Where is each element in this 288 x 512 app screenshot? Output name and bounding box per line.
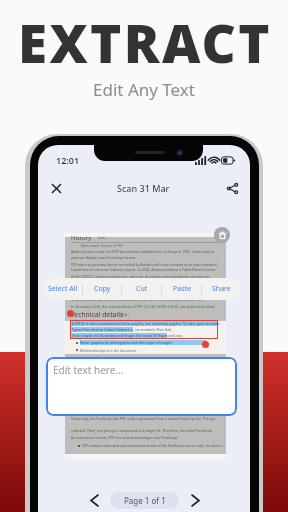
staticText: as video, audio and 3D objects. PDF file… — [71, 364, 206, 369]
staticText: Committee of volunteer industry experts.… — [71, 267, 216, 272]
staticText: In addition to graphics and text, PDF su… — [71, 357, 211, 362]
button[interactable]: Next page — [187, 492, 203, 509]
staticText: EXTRACT — [18, 6, 272, 78]
staticText: As a document format, PDF has several ad… — [71, 435, 179, 440]
staticText: Scan 31 Mar — [117, 182, 170, 194]
staticText: History — [71, 234, 92, 242]
button[interactable]: Edit text here... — [46, 357, 237, 416]
staticText: Multimedia objects in the document. — [80, 348, 137, 352]
button[interactable]: Close — [45, 177, 67, 199]
staticText: In December 2020, the second edition of … — [71, 304, 215, 309]
staticText: collected. Then, everything is compresse… — [71, 428, 212, 433]
button[interactable]: Paste — [162, 278, 201, 300]
staticText: PDF 1.7, the sixth edition of the PDF sp… — [71, 286, 215, 291]
staticText: PDF contains tokenized and interpreted r… — [82, 443, 223, 448]
staticText: Edit text here... — [53, 363, 124, 377]
staticText: Copy — [94, 284, 111, 294]
staticText: Vector Graphics for Illustrations and De… — [72, 334, 183, 338]
button[interactable]: Cut — [122, 278, 161, 300]
button[interactable]: Delete — [214, 227, 230, 243]
staticText: Adobe Systems made the PDF specification… — [71, 249, 215, 254]
button[interactable]: Copy — [83, 278, 121, 300]
button[interactable]: Share — [202, 278, 241, 300]
staticText: text and graphics including logical stru… — [71, 371, 207, 376]
staticText: Cut — [136, 284, 148, 294]
staticText: Typeset Text stored as Content Streams (… — [72, 328, 172, 332]
staticText: PDF was a proprietary format controlled … — [71, 262, 217, 267]
staticText: [edit] — [121, 313, 129, 317]
staticText: Historically, the PostScript-like PDF co… — [71, 416, 215, 421]
staticText: Select All — [48, 284, 78, 294]
staticText: [edit] — [98, 236, 106, 240]
button[interactable]: Share — [221, 177, 243, 199]
staticText: A PDF file is often a combination of vec… — [72, 322, 220, 326]
staticText: Raster graphics for photographs and othe… — [80, 340, 172, 344]
staticText: proprietary technologies defined only by… — [71, 292, 211, 297]
staticText: and even Adobe's own PostScript format. — [71, 255, 137, 260]
staticText: Paste — [173, 284, 191, 294]
button[interactable]: Page 1 of 1 — [110, 492, 179, 509]
button[interactable]: Select All — [44, 278, 82, 300]
button[interactable]: Previous page — [86, 492, 102, 509]
staticText: (XFA) and JavaScript extension for Acrob… — [71, 297, 202, 302]
staticText: to ISO 32000-1 granting royalty-free rig… — [71, 274, 210, 279]
staticText: Edit Any Text — [93, 78, 195, 101]
staticText: Share — [212, 284, 231, 294]
staticText: Technical details — [71, 310, 124, 319]
staticText: Page 1 of 1 — [124, 495, 166, 506]
staticText: Main article: History of PDF — [81, 243, 123, 247]
staticText: 12:01 — [56, 154, 80, 166]
